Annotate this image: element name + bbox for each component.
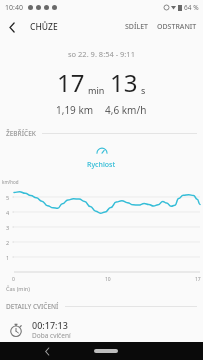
staticText: 10 xyxy=(105,276,111,283)
button[interactable]: Domů xyxy=(94,349,118,353)
button[interactable]: Zpět xyxy=(0,15,24,39)
staticText: Čas (min) xyxy=(6,285,30,292)
staticText: 00:17:13 xyxy=(32,319,68,331)
staticText: DETAILY CVIČENÍ xyxy=(6,302,59,311)
staticText: ŽEBŘÍČEK xyxy=(6,129,36,138)
staticText: km/hod xyxy=(2,179,19,185)
staticText: 17 xyxy=(195,276,201,283)
staticText: min xyxy=(88,84,105,96)
staticText: 10:40 xyxy=(5,3,23,13)
staticText: 1,19 km xyxy=(56,103,94,117)
staticText: so 22. 9. 8:54 - 9:11 xyxy=(68,49,135,59)
staticText: ODSTRANIT xyxy=(157,22,197,32)
button[interactable]: 00:17:13 xyxy=(0,317,203,342)
staticText: SDÍLET xyxy=(125,22,149,32)
button[interactable]: Zpět xyxy=(38,342,56,360)
staticText: 4,6 km/h xyxy=(105,103,147,117)
staticText: 17 xyxy=(57,66,85,99)
button[interactable]: Rychlost xyxy=(79,144,124,172)
staticText: Rychlost xyxy=(87,160,116,170)
button[interactable]: SDÍLET xyxy=(120,17,154,37)
staticText: 4 xyxy=(6,209,10,216)
staticText: 2 xyxy=(6,239,10,246)
staticText: 13 xyxy=(110,66,138,99)
staticText: 0 xyxy=(12,276,15,283)
button[interactable]: ODSTRANIT xyxy=(154,17,203,37)
staticText: 3 xyxy=(6,224,10,231)
staticText: 1 xyxy=(6,254,10,261)
staticText: Doba cvičení xyxy=(32,331,71,340)
staticText: 5 xyxy=(6,194,10,201)
staticText: s xyxy=(141,84,146,96)
staticText: CHŮZE xyxy=(30,21,58,33)
staticText: 64 % xyxy=(184,3,199,12)
